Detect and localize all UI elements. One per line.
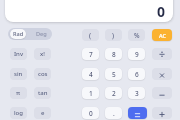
button[interactable]: Multiply	[152, 68, 172, 80]
button[interactable]: x!	[34, 48, 51, 60]
button[interactable]: Add	[152, 107, 172, 119]
button[interactable]: log	[10, 107, 27, 119]
button[interactable]: Divide	[152, 48, 172, 60]
staticText: x!	[40, 50, 45, 58]
staticText: tan	[38, 89, 48, 97]
staticText: AC	[159, 32, 166, 39]
staticText: 9	[135, 50, 139, 59]
staticText: 0	[157, 2, 166, 21]
button[interactable]: 3	[128, 87, 145, 99]
staticText: 6	[135, 70, 139, 79]
staticText: Deg	[36, 30, 47, 38]
button[interactable]: .	[105, 107, 122, 119]
staticText: 8	[112, 50, 116, 59]
staticText: cos	[38, 70, 48, 78]
staticText: π	[16, 89, 21, 97]
button[interactable]: 1	[82, 87, 99, 99]
button[interactable]: (	[82, 29, 99, 41]
staticText: 4	[89, 70, 93, 79]
staticText: 0	[89, 109, 93, 118]
staticText: %	[134, 31, 140, 40]
staticText: )	[112, 31, 115, 40]
staticText: Inv	[14, 50, 24, 58]
button[interactable]: Equals	[128, 107, 147, 119]
button[interactable]: 7	[82, 48, 99, 60]
button[interactable]: cos	[34, 68, 51, 80]
staticText: sin	[14, 70, 23, 78]
button[interactable]: AC	[152, 29, 172, 41]
button[interactable]: )	[105, 29, 122, 41]
staticText: 3	[135, 89, 139, 98]
staticText: log	[14, 109, 24, 117]
button[interactable]: 6	[128, 68, 145, 80]
button[interactable]: Inv	[10, 48, 27, 60]
button[interactable]: 2	[105, 87, 122, 99]
button[interactable]: sin	[10, 68, 27, 80]
button[interactable]: tan	[34, 87, 51, 99]
staticText: .	[113, 109, 115, 118]
staticText: e	[41, 109, 45, 117]
button[interactable]: π	[10, 87, 27, 99]
button[interactable]: %	[128, 29, 145, 41]
staticText: 2	[112, 89, 116, 98]
staticText: 7	[89, 50, 93, 59]
button[interactable]: Subtract	[152, 87, 172, 99]
staticText: (	[89, 31, 92, 40]
button[interactable]: 5	[105, 68, 122, 80]
button[interactable]: 9	[128, 48, 145, 60]
button[interactable]: 0	[82, 107, 99, 119]
staticText: 5	[112, 70, 116, 79]
button[interactable]: Deg	[32, 29, 50, 39]
staticText: Rad	[13, 30, 24, 38]
button[interactable]: e	[34, 107, 51, 119]
button[interactable]: Rad	[10, 29, 26, 39]
button[interactable]: 4	[82, 68, 99, 80]
staticText: 1	[89, 89, 93, 98]
button[interactable]: 8	[105, 48, 122, 60]
